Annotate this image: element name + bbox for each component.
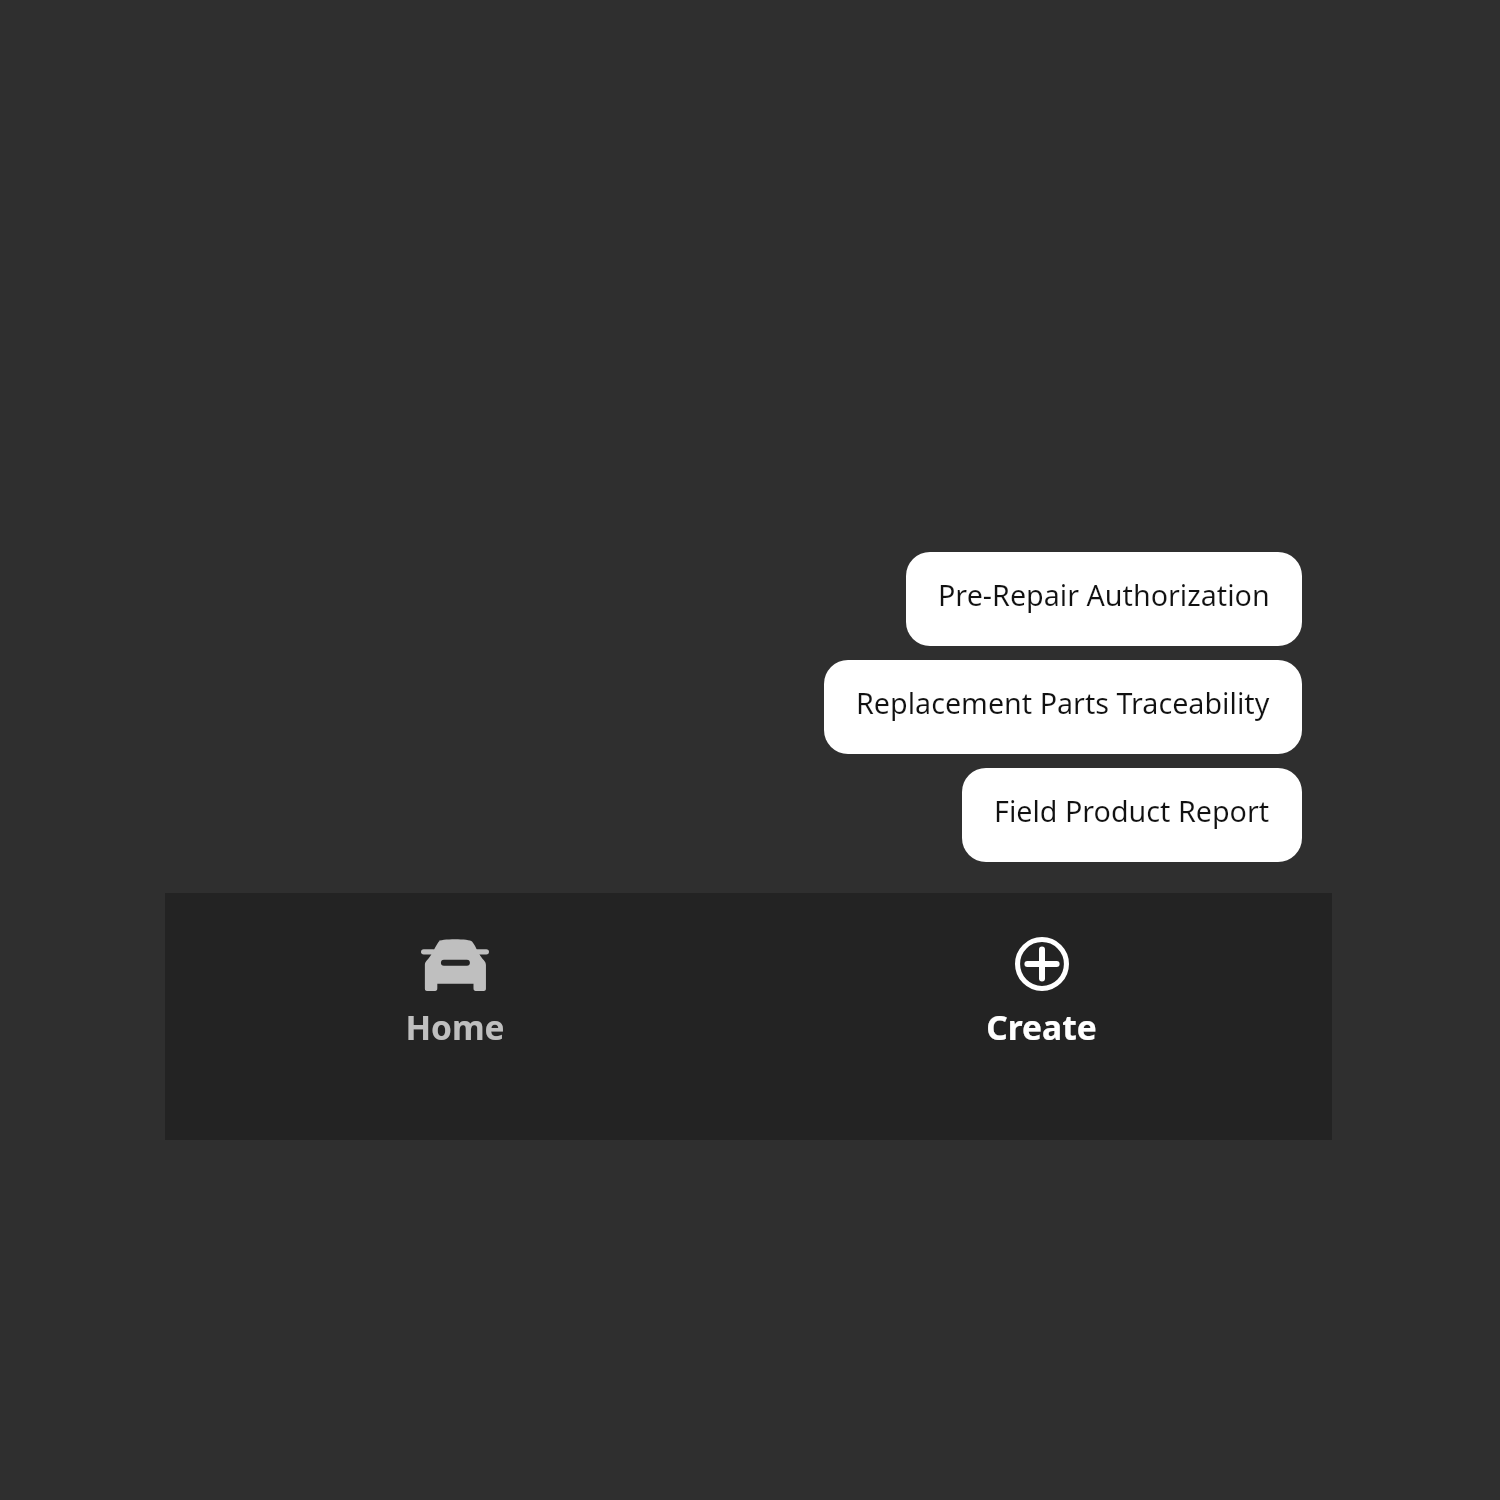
other: Home bbox=[421, 939, 489, 991]
button[interactable]: Pre-Repair Authorization bbox=[906, 552, 1302, 646]
staticText: Replacement Parts Traceability bbox=[856, 683, 1270, 722]
button[interactable]: Create bbox=[748, 893, 1335, 1140]
staticText: Home bbox=[405, 1004, 505, 1050]
button[interactable]: Replacement Parts Traceability bbox=[824, 660, 1302, 754]
button[interactable]: Home bbox=[162, 893, 748, 1140]
other: Create bbox=[1015, 937, 1069, 991]
button[interactable]: Field Product Report bbox=[962, 768, 1302, 862]
staticText: Pre-Repair Authorization bbox=[938, 575, 1270, 614]
staticText: Field Product Report bbox=[994, 791, 1270, 830]
staticText: Create bbox=[986, 1004, 1097, 1050]
